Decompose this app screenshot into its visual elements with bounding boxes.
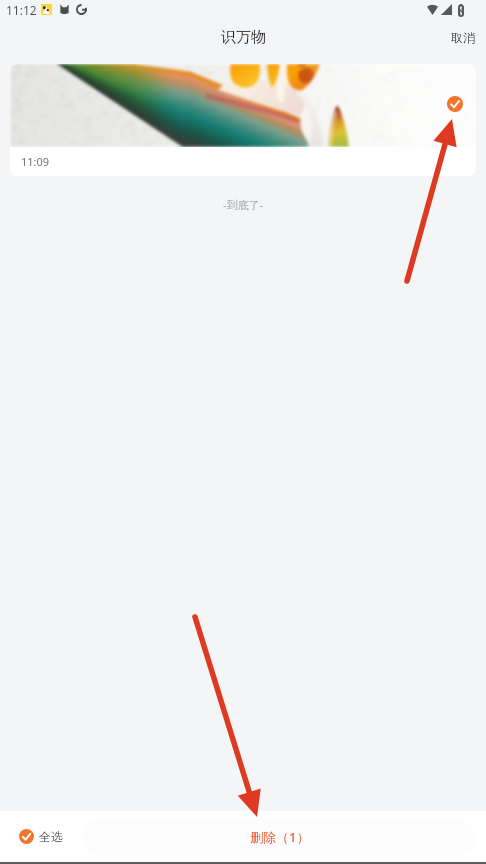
staticText: 11:12 <box>6 2 37 18</box>
staticText: 删除（1） <box>250 828 310 846</box>
button[interactable]: 取消 <box>438 26 486 53</box>
staticText: 识万物 <box>221 28 266 47</box>
staticText: -到底了- <box>0 197 486 212</box>
staticText: 取消 <box>451 30 475 45</box>
button[interactable]: Selected <box>447 96 463 112</box>
staticText: 11:09 <box>21 154 50 169</box>
button[interactable]: 删除（1） <box>83 819 476 855</box>
button[interactable]: 11:09 <box>10 64 476 176</box>
staticText: 全选 <box>39 829 63 844</box>
button[interactable]: 全选 <box>0 822 71 851</box>
